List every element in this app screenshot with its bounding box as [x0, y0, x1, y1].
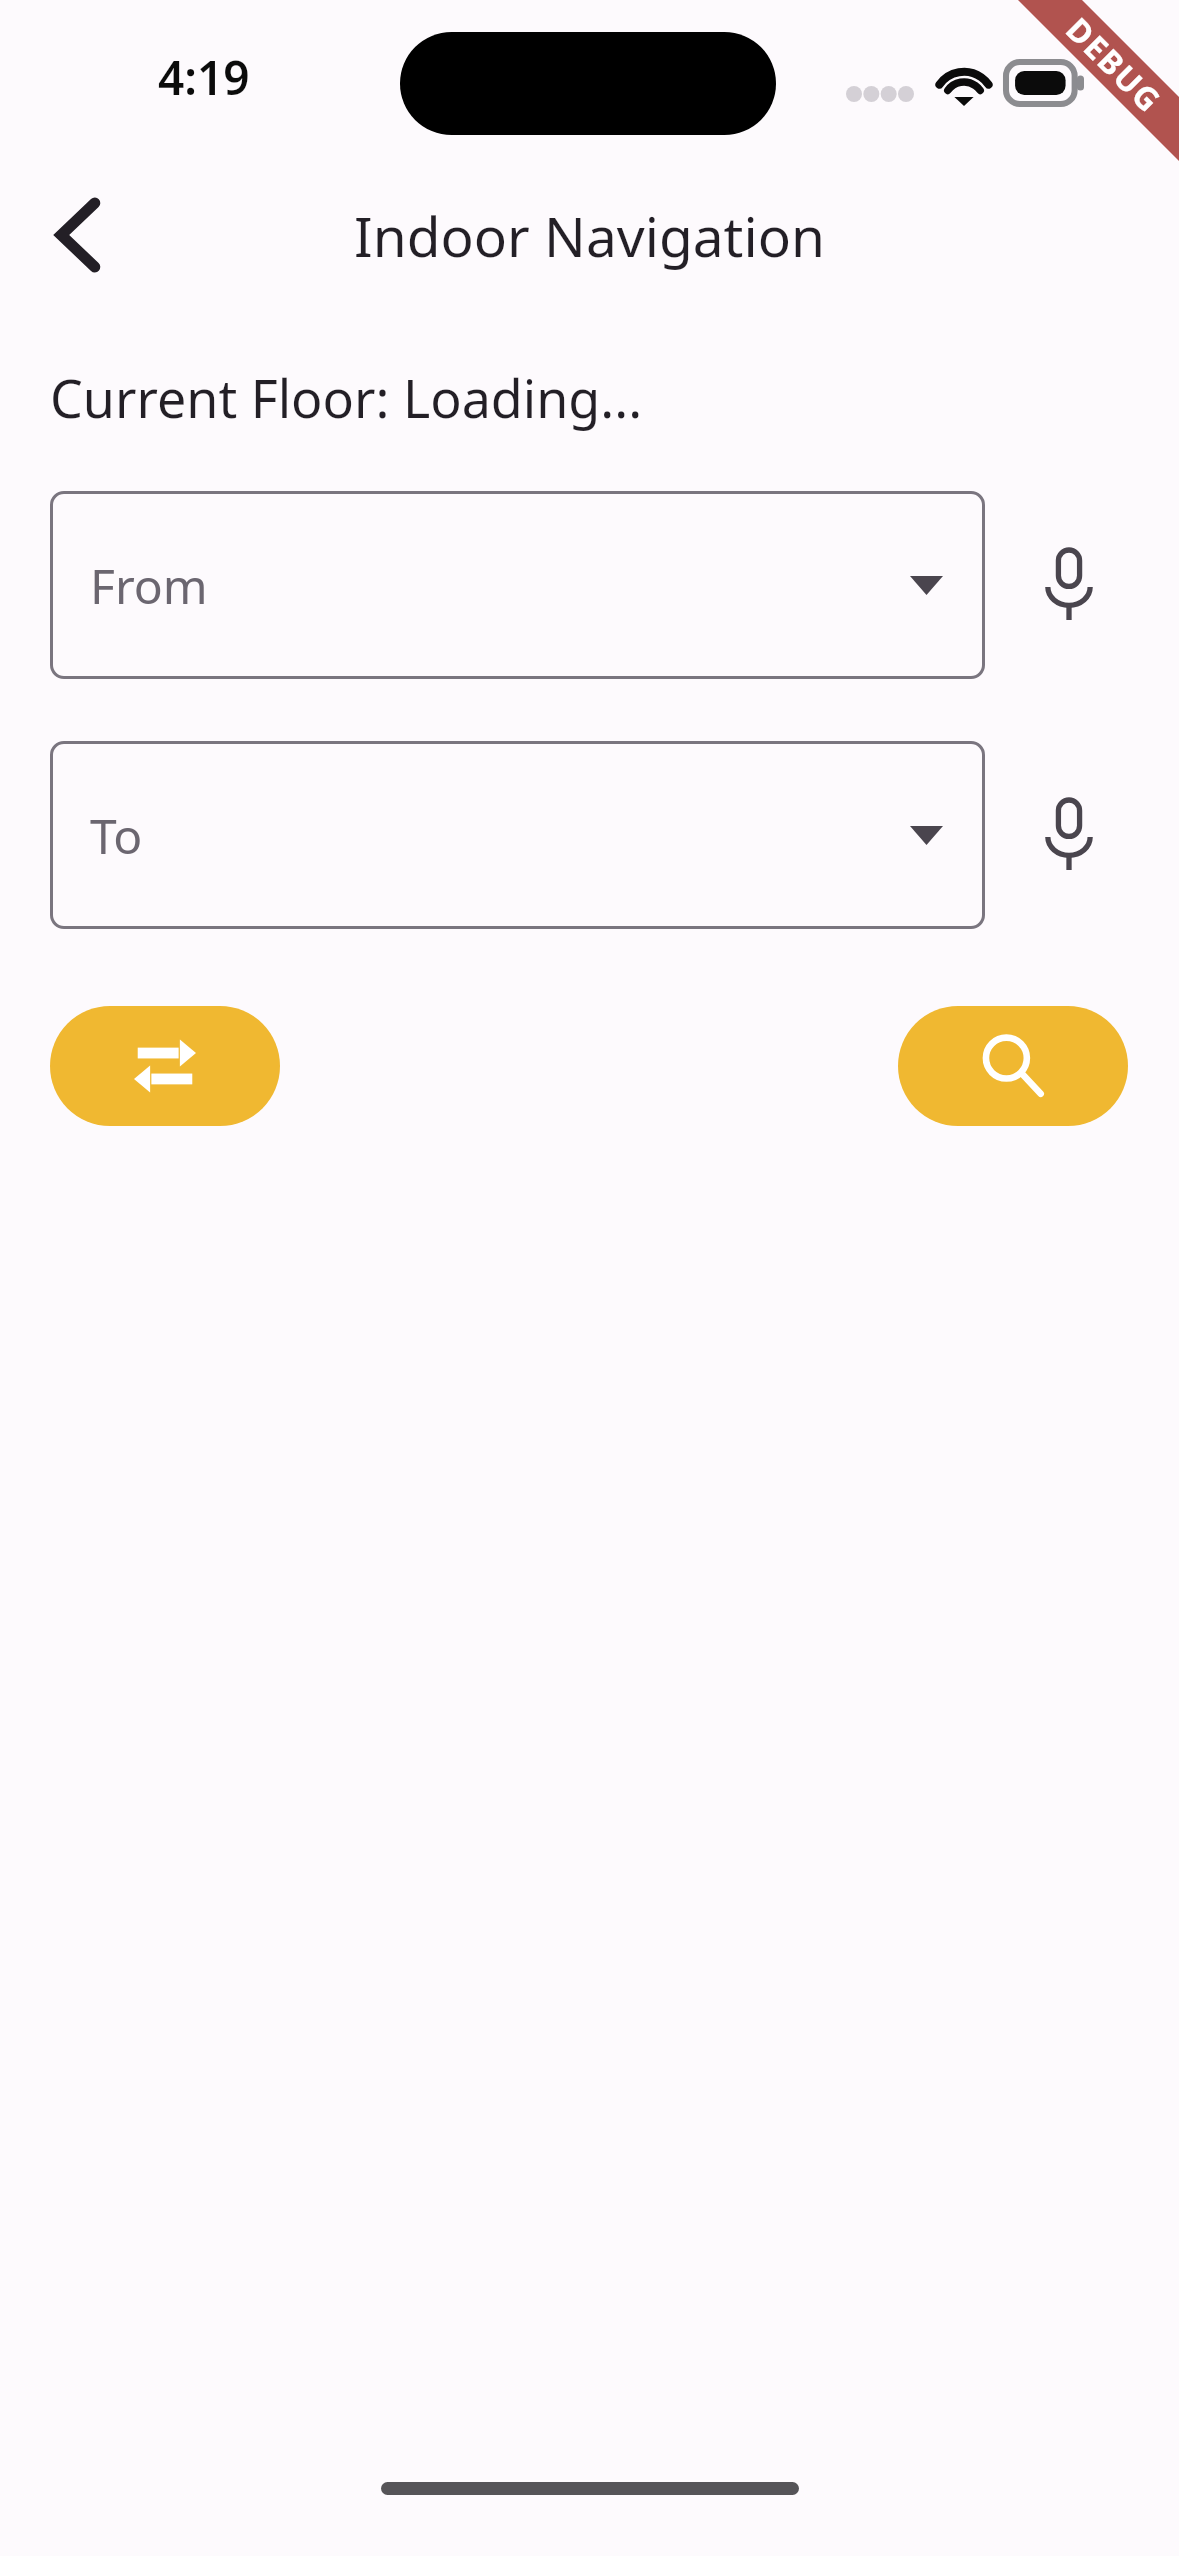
button[interactable]: Swap from and to [50, 1006, 280, 1126]
button[interactable]: Voice input for To [1003, 769, 1135, 901]
button[interactable]: To [50, 741, 985, 929]
staticText: From [90, 553, 208, 618]
staticText: DEBUG [1057, 8, 1171, 122]
button[interactable]: Voice input for From [1003, 519, 1135, 651]
button[interactable]: Back [30, 187, 126, 283]
staticText: Indoor Navigation [354, 198, 825, 273]
button[interactable]: From [50, 491, 985, 679]
button[interactable]: Search route [898, 1006, 1128, 1126]
staticText: 4:19 [158, 46, 250, 109]
staticText: To [90, 803, 143, 868]
staticText: Current Floor: Loading... [50, 362, 643, 433]
